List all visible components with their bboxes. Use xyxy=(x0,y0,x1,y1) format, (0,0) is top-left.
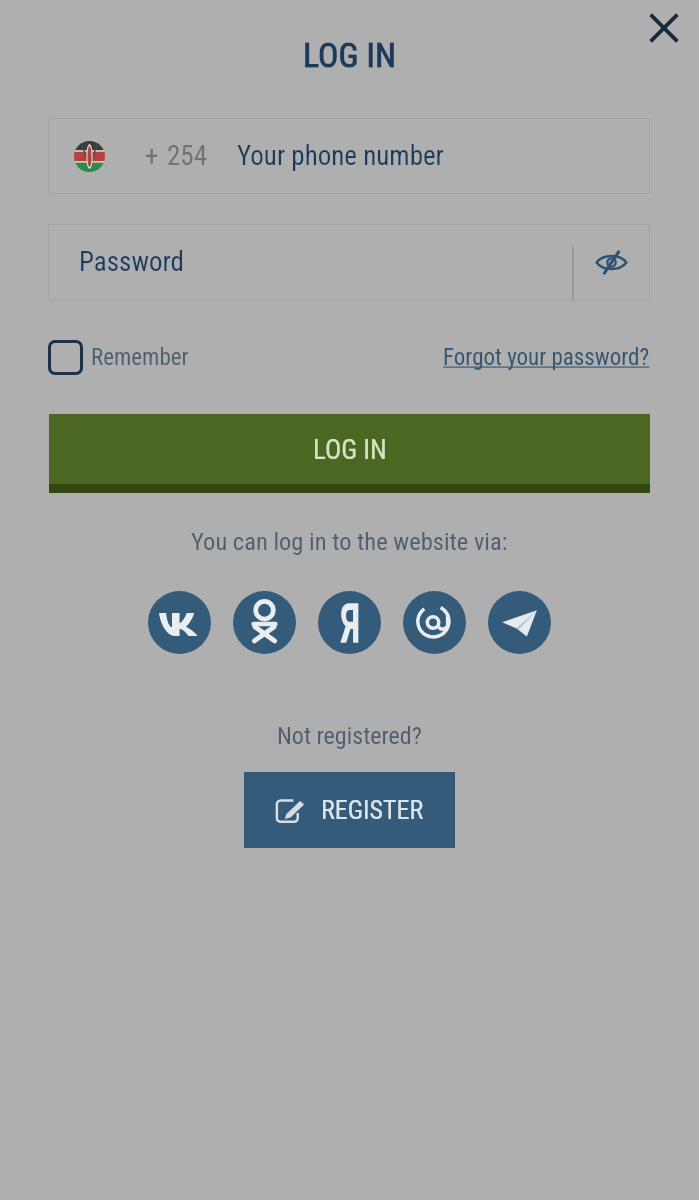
staticText: Your phone number xyxy=(237,140,444,172)
staticText: + xyxy=(145,140,159,172)
button[interactable]: Odnoklassniki xyxy=(233,591,296,654)
staticText: REGISTER xyxy=(321,795,424,825)
button[interactable]: + xyxy=(48,118,650,194)
button[interactable]: Close xyxy=(641,5,686,50)
button[interactable]: REGISTER xyxy=(244,772,455,848)
staticText: You can log in to the website via: xyxy=(191,527,508,556)
staticText: Remember xyxy=(91,344,189,371)
button[interactable]: VK xyxy=(148,591,211,654)
button[interactable]: Remember xyxy=(48,340,189,375)
button[interactable]: Show password xyxy=(573,224,650,300)
button[interactable]: Forgot your password? xyxy=(443,344,650,371)
staticText: Not registered? xyxy=(277,722,422,750)
button[interactable]: Password xyxy=(48,224,650,300)
button[interactable]: LOG IN xyxy=(49,414,650,493)
staticText: LOG IN xyxy=(303,35,396,75)
staticText: LOG IN xyxy=(313,434,387,466)
button[interactable]: Yandex xyxy=(318,591,381,654)
button[interactable]: Mail xyxy=(403,591,466,654)
staticText: 254 xyxy=(167,140,207,172)
staticText: Password xyxy=(79,246,184,278)
button[interactable]: Telegram xyxy=(488,591,551,654)
